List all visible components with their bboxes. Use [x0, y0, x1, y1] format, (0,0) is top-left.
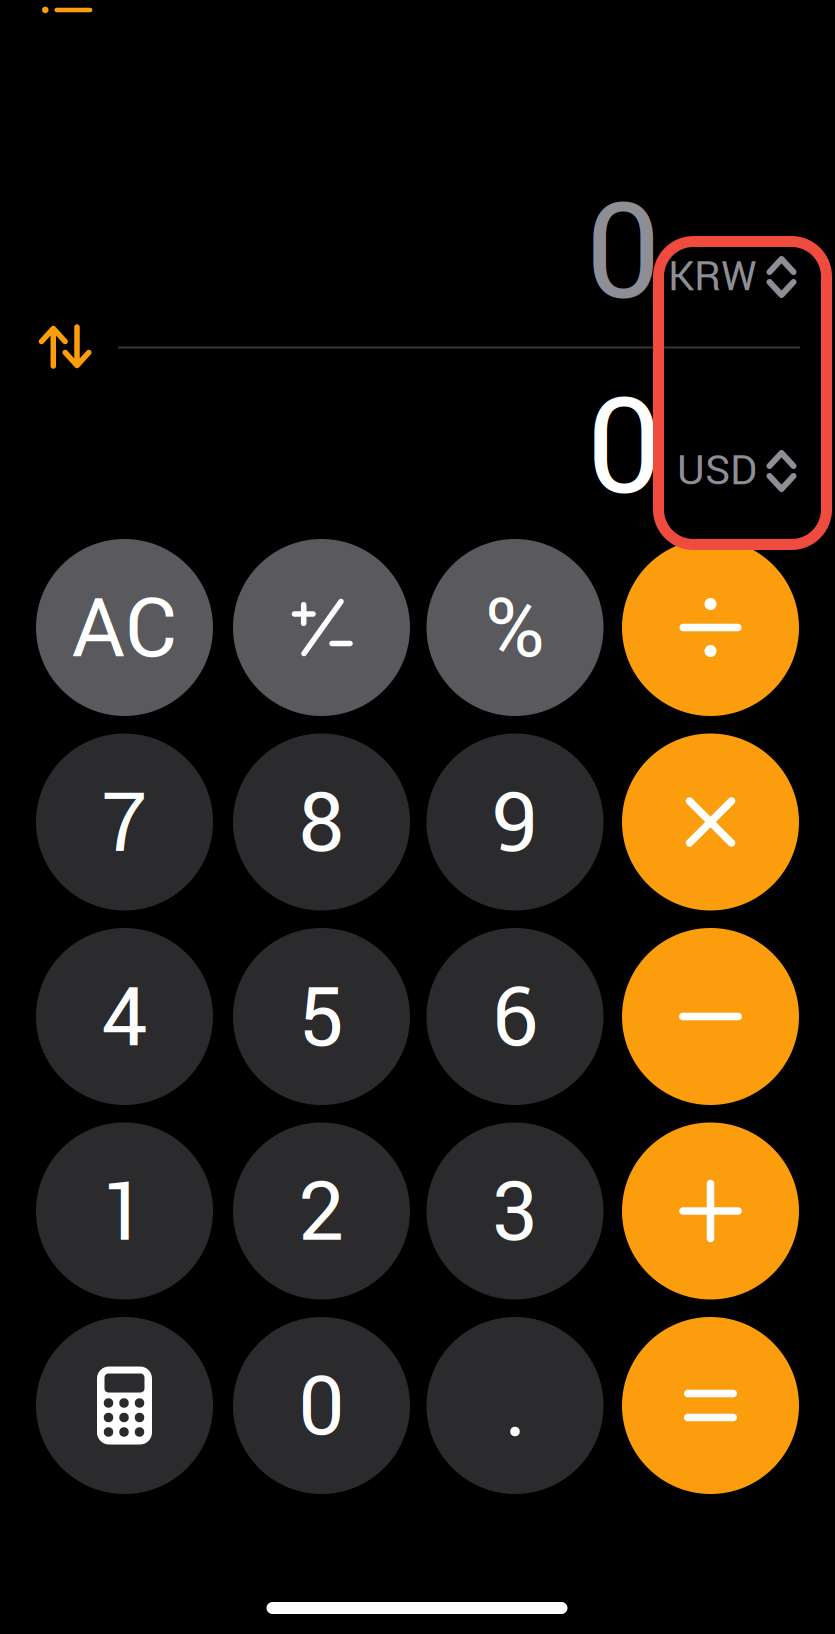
staticText: % [485, 571, 545, 689]
staticText: USD [677, 442, 757, 500]
staticText: KRW [668, 248, 757, 306]
button[interactable]: Plus minus [233, 539, 410, 716]
staticText: 4 [101, 960, 147, 1078]
staticText: AC [72, 571, 177, 689]
button[interactable]: 2 [233, 1122, 410, 1299]
staticText: 0 [298, 1349, 344, 1467]
button[interactable]: 9 [426, 733, 603, 910]
staticText: 2 [298, 1155, 344, 1272]
button[interactable]: 6 [426, 928, 603, 1105]
button[interactable]: Swap currencies [36, 324, 92, 370]
button[interactable]: AC [36, 539, 213, 716]
button[interactable]: Divide [622, 539, 799, 716]
button[interactable]: Change source currency [667, 247, 797, 307]
staticText: 9 [492, 766, 538, 883]
button[interactable]: 1 [36, 1122, 213, 1299]
staticText: 7 [101, 766, 147, 883]
button[interactable]: 4 [36, 928, 213, 1105]
staticText: 3 [492, 1155, 538, 1272]
button[interactable]: 5 [233, 928, 410, 1105]
staticText: 0 [586, 160, 660, 350]
button[interactable]: Calculator [36, 1317, 213, 1494]
button[interactable]: Add [622, 1122, 799, 1299]
staticText: 5 [298, 960, 344, 1078]
button[interactable]: Change target currency [667, 441, 797, 501]
staticText: 8 [298, 766, 344, 883]
button[interactable]: 0 [233, 1317, 410, 1494]
button[interactable]: Subtract [622, 928, 799, 1105]
staticText: 1 [101, 1155, 147, 1272]
staticText: 0 [587, 355, 661, 545]
button[interactable]: 3 [426, 1122, 603, 1299]
button[interactable]: 7 [36, 733, 213, 910]
button[interactable]: Equals [622, 1317, 799, 1494]
button[interactable]: Decimal point [426, 1317, 603, 1494]
button[interactable]: Multiply [622, 733, 799, 910]
staticText: 6 [492, 960, 538, 1078]
button[interactable]: 8 [233, 733, 410, 910]
button[interactable]: % [426, 539, 603, 716]
